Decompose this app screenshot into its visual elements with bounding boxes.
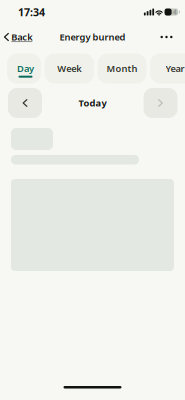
button[interactable]: Week: [44, 53, 94, 83]
button[interactable]: Year: [150, 53, 185, 83]
button[interactable]: More: [160, 36, 185, 38]
button[interactable]: Previous day: [8, 88, 42, 118]
staticText: 17:34: [18, 5, 45, 19]
staticText: Year: [165, 62, 184, 75]
staticText: Today: [78, 97, 106, 109]
button[interactable]: Day: [7, 53, 41, 83]
staticText: Energy burned: [59, 31, 125, 43]
staticText: Day: [17, 62, 34, 75]
button[interactable]: Back: [0, 31, 32, 43]
button[interactable]: Next day: [143, 88, 177, 118]
staticText: Week: [57, 62, 81, 75]
staticText: Month: [106, 62, 137, 75]
staticText: Back: [11, 31, 32, 43]
staticText: 4: [173, 8, 177, 16]
button[interactable]: Month: [97, 53, 146, 83]
